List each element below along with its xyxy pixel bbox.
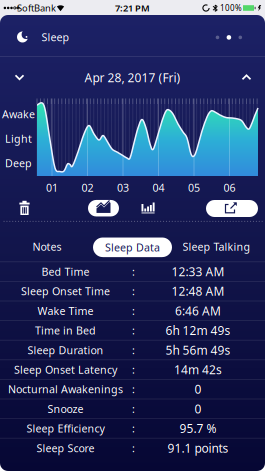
- staticText: 5h 56m 49s: [165, 342, 230, 358]
- button[interactable]: Notes: [32, 239, 61, 254]
- staticText: :: [132, 304, 135, 318]
- staticText: 12:33 AM: [171, 264, 224, 279]
- button[interactable]: Sleep Talking: [182, 239, 250, 254]
- button[interactable]: Previous day: [10, 69, 28, 85]
- staticText: Snooze: [47, 402, 83, 416]
- button[interactable]: Share: [206, 200, 258, 217]
- staticText: :: [132, 362, 135, 377]
- staticText: 05: [188, 180, 200, 195]
- staticText: 03: [117, 180, 129, 195]
- staticText: SoftBank: [17, 2, 56, 14]
- staticText: 0: [194, 401, 201, 417]
- staticText: Sleep Data: [105, 240, 160, 254]
- staticText: 6h 12m 49s: [165, 322, 230, 338]
- staticText: Awake: [2, 107, 35, 121]
- staticText: Light: [5, 131, 32, 146]
- button[interactable]: Line chart: [88, 200, 119, 216]
- button[interactable]: Bar chart: [140, 201, 156, 215]
- staticText: :: [132, 284, 135, 298]
- staticText: 95.7 %: [179, 420, 216, 436]
- staticText: Sleep Onset Latency: [14, 362, 117, 377]
- staticText: Apr 28, 2017 (Fri): [84, 69, 180, 85]
- staticText: Notes: [32, 239, 61, 254]
- staticText: 7:21 PM: [115, 2, 150, 14]
- staticText: 100%: [220, 3, 242, 13]
- staticText: Time in Bed: [35, 323, 96, 337]
- staticText: :: [132, 343, 135, 357]
- button[interactable]: Sleep Data: [93, 237, 172, 257]
- staticText: :: [132, 421, 135, 435]
- button[interactable]: Delete: [16, 199, 32, 217]
- staticText: :: [132, 441, 135, 455]
- staticText: 6:46 AM: [175, 303, 221, 319]
- staticText: Sleep Duration: [27, 343, 103, 357]
- staticText: 12:48 AM: [171, 283, 224, 299]
- staticText: 02: [81, 180, 93, 195]
- staticText: Wake Time: [37, 304, 93, 318]
- staticText: 01: [46, 180, 58, 195]
- button[interactable]: Page: [214, 32, 244, 42]
- staticText: 0: [194, 381, 201, 397]
- button[interactable]: Next day: [237, 69, 255, 85]
- staticText: Bed Time: [41, 264, 89, 279]
- staticText: Nocturnal Awakenings: [8, 382, 123, 396]
- staticText: 91.1 points: [167, 440, 228, 456]
- staticText: :: [132, 382, 135, 396]
- staticText: 06: [223, 180, 235, 195]
- staticText: :: [132, 264, 135, 279]
- staticText: Sleep: [41, 30, 69, 44]
- staticText: Sleep Talking: [182, 239, 250, 254]
- staticText: Sleep Efficiency: [26, 421, 104, 435]
- staticText: :: [132, 323, 135, 337]
- staticText: :: [132, 402, 135, 416]
- staticText: Sleep Score: [36, 441, 94, 455]
- staticText: Deep: [5, 156, 32, 170]
- staticText: Sleep Onset Time: [21, 284, 110, 298]
- staticText: 14m 42s: [174, 362, 222, 377]
- staticText: 04: [152, 180, 164, 195]
